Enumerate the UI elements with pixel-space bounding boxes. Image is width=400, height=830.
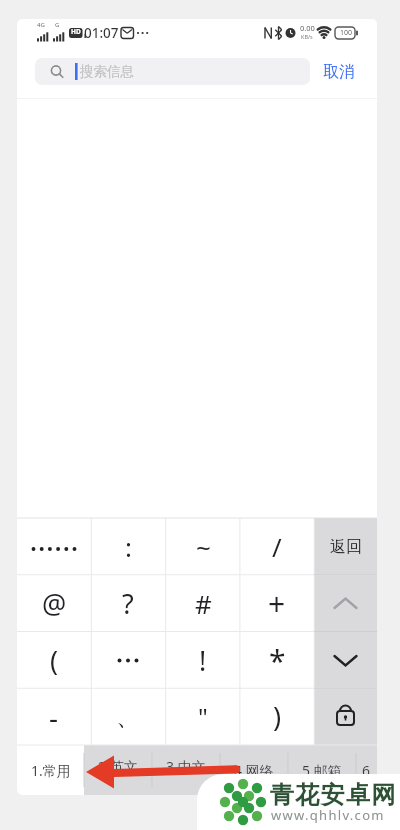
button[interactable]: [17, 745, 84, 795]
button[interactable]: ~: [166, 518, 240, 575]
button[interactable]: (: [17, 632, 91, 689]
button[interactable]: [314, 688, 377, 745]
button[interactable]: 5.邮箱: [288, 745, 356, 795]
staticText: !: [199, 642, 207, 679]
button[interactable]: 6: [356, 745, 377, 795]
button[interactable]: 1.常用: [17, 745, 84, 795]
staticText: ~: [196, 529, 211, 564]
staticText: /: [272, 529, 282, 564]
button[interactable]: 取消: [318, 58, 360, 85]
button[interactable]: *: [240, 632, 314, 689]
button[interactable]: #: [166, 575, 240, 632]
staticText: 4.网络: [234, 761, 274, 780]
staticText: G: [55, 21, 60, 29]
button[interactable]: 、: [91, 688, 165, 745]
staticText: 6: [362, 761, 371, 780]
button[interactable]: :: [91, 518, 165, 575]
staticText: 100: [340, 28, 353, 38]
staticText: #: [195, 586, 212, 621]
button[interactable]: ?: [91, 575, 165, 632]
button[interactable]: 3.中文: [152, 741, 220, 791]
staticText: 0.00: [300, 23, 315, 33]
button[interactable]: @: [17, 575, 91, 632]
staticText: 取消: [323, 62, 355, 82]
staticText: :: [125, 529, 132, 564]
button[interactable]: [91, 632, 165, 689]
staticText: 4G: [37, 21, 45, 29]
staticText: HD: [71, 27, 81, 36]
staticText: KB/s: [301, 33, 313, 40]
button[interactable]: 搜索信息: [35, 58, 310, 85]
button[interactable]: -: [17, 688, 91, 745]
button[interactable]: 返回: [314, 518, 377, 575]
staticText: -: [49, 698, 59, 736]
button[interactable]: [17, 518, 91, 575]
staticText: 01:07: [84, 24, 119, 42]
staticText: 搜索信息: [80, 63, 134, 80]
button[interactable]: [314, 632, 377, 689]
staticText: 1.常用: [31, 761, 71, 780]
button[interactable]: [314, 575, 377, 632]
staticText: +: [268, 583, 286, 624]
staticText: 返回: [330, 537, 362, 557]
staticText: 2.英文: [98, 757, 138, 776]
staticText: ): [273, 698, 282, 735]
staticText: 、: [116, 702, 140, 732]
staticText: www.qhhlv.com: [271, 806, 385, 824]
staticText: @: [42, 585, 67, 622]
staticText: (: [50, 642, 59, 679]
button[interactable]: 2.英文: [84, 741, 152, 791]
button[interactable]: 4.网络: [220, 745, 288, 795]
button[interactable]: /: [240, 518, 314, 575]
staticText: 5.邮箱: [302, 761, 342, 780]
button[interactable]: !: [166, 632, 240, 689]
button[interactable]: ): [240, 688, 314, 745]
staticText: ": [198, 700, 208, 733]
staticText: 3.中文: [166, 757, 206, 776]
staticText: *: [269, 640, 286, 681]
button[interactable]: ": [166, 688, 240, 745]
staticText: ?: [122, 585, 134, 622]
staticText: 青花安卓网: [269, 780, 396, 807]
button[interactable]: +: [240, 575, 314, 632]
